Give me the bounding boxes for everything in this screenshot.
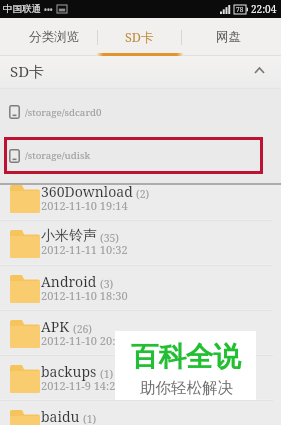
button[interactable]: 网盘 [179,18,278,56]
button[interactable]: baidu [0,401,281,425]
staticText: (35) [100,231,120,245]
staticText: (1) [83,412,97,425]
staticText: 2012-11-11 10:32 [41,242,128,257]
button[interactable]: backups [0,356,281,401]
staticText: /storage/sdcard0 [25,106,102,119]
staticText: 网盘 [216,29,242,45]
staticText: 小米铃声 [41,227,97,245]
button[interactable]: 360Download [0,176,281,221]
button[interactable]: APK [0,311,281,356]
staticText: (26) [73,322,93,336]
staticText: 2012-11-9 14:22 [41,378,122,393]
staticText: 2012-11-9 10:05 [41,423,122,425]
staticText: SD卡 [10,61,45,81]
staticText: 2012-11-10 19:14 [41,198,128,213]
staticText: baidu [41,407,80,425]
button[interactable]: SD卡 [0,56,281,89]
staticText: 分类浏览 [29,29,80,45]
staticText: /storage/udisk [25,149,91,162]
staticText: 360Download [41,182,133,201]
staticText: 2012-11-10 18:30 [41,288,128,303]
button[interactable]: SD卡 [97,18,181,56]
staticText: 2012-11-10 20:11 [41,333,128,348]
staticText: 78 [236,5,244,14]
button[interactable]: /storage/sdcard0 [0,89,281,135]
button[interactable]: 分类浏览 [6,18,103,56]
staticText: ••• [44,4,53,15]
staticText: 中国联通 [3,3,41,15]
staticText: (3) [100,277,114,291]
staticText: Android [41,272,97,291]
button[interactable]: /storage/udisk [0,135,281,176]
staticText: APK [41,317,70,336]
other: Collapse [255,68,264,73]
staticText: 22:04 [251,2,277,16]
button[interactable]: Android [0,266,281,311]
staticText: backups [41,362,97,381]
staticText: 助你轻松解决 [140,378,233,398]
staticText: (1) [100,367,114,381]
button[interactable]: 小米铃声 [0,221,281,266]
staticText: (2) [136,187,150,201]
staticText: SD卡 [125,29,154,46]
staticText: 百科全说 [131,340,241,375]
